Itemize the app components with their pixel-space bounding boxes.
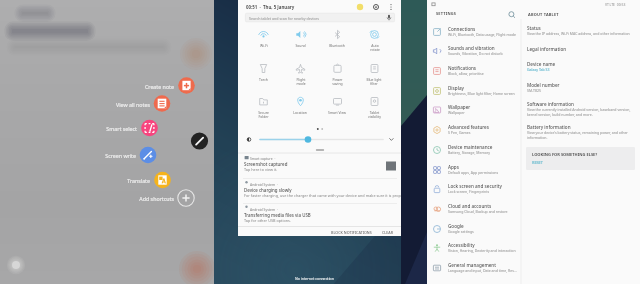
staticText: VT LTE 00:53 [605,2,626,7]
staticText: Model number [527,82,560,88]
button[interactable]: Connections [427,23,521,43]
staticText: Legal information [527,46,567,52]
button[interactable]: Advanced features [427,121,521,141]
staticText: Wi-Fi [260,43,268,48]
staticText: Cloud and accounts [448,203,492,209]
staticText: Smart View [328,110,346,115]
button[interactable]: Tablet visibility [356,96,392,124]
button[interactable]: Wallpaper [427,101,521,121]
staticText: Brightness, Blue light filter, Home scre… [448,91,515,96]
staticText: Accessibility [448,242,475,248]
staticText: General management [448,262,497,268]
button[interactable]: Apps [427,161,521,181]
staticText: Samsung Cloud, Backup and restore [448,209,508,214]
button[interactable]: Device name [523,61,635,79]
button[interactable]: Model number [523,82,635,100]
staticText: View your device's battery status, remai… [527,130,628,140]
button[interactable]: Lock screen and security [427,180,521,200]
button[interactable]: Translate [70,173,150,187]
staticText: Language and input, Date and time, Res… [448,268,517,273]
button[interactable]: Device maintenance [427,141,521,161]
staticText: Wallpaper [448,110,465,115]
staticText: View the currently installed Android ver… [527,107,631,117]
button[interactable]: Software information [523,101,635,119]
staticText: Lock screen, Fingerprints [448,189,490,194]
button[interactable]: Screen write [56,148,136,162]
button[interactable]: Battery information [523,124,635,142]
button[interactable]: View all notes [70,97,150,111]
button[interactable]: Display [427,82,521,102]
button[interactable]: Air command pen [191,132,208,149]
button[interactable]: Secure Folder [245,96,281,124]
staticText: S Pen, Games [448,130,471,135]
staticText: View all notes [116,101,150,108]
staticText: Transferring media files via USB [244,212,311,218]
staticText: View the IP address, Wi-Fi MAC address, … [527,31,630,36]
staticText: Block, allow, prioritise [448,71,484,76]
button[interactable]: Search settings [506,9,518,21]
button[interactable]: Auto rotate [356,29,392,57]
button[interactable]: Accessibility [427,239,521,259]
staticText: Software information [527,101,574,107]
staticText: Power saving [332,77,343,86]
button[interactable]: CLEAR [380,229,396,236]
staticText: Auto rotate [370,43,380,52]
staticText: Apps [448,164,459,170]
button[interactable]: BLOCK NOTIFICATIONS [329,229,374,236]
button[interactable]: Wi-Fi [245,29,281,57]
staticText: Galaxy Tab S3 [527,67,550,72]
staticText: For faster charging, use the charger tha… [244,193,408,198]
button[interactable]: Smart capture · [238,155,402,179]
staticText: Notifications [448,65,477,71]
staticText: Battery information [527,124,571,130]
button[interactable]: Blue light filter [356,63,392,91]
staticText: Display [448,85,464,91]
button[interactable]: Smart View [319,96,355,124]
button[interactable]: Android System · [238,181,402,205]
staticText: Sounds, Vibration, Do not disturb [448,51,503,56]
staticText: Search tablet and scan for nearby device… [249,16,319,21]
button[interactable]: Sound [282,29,318,57]
staticText: Flight mode [296,77,306,86]
staticText: SETTINGS [436,11,457,16]
staticText: Android System · [250,182,278,187]
staticText: Connections [448,26,476,32]
staticText: Secure Folder [258,110,269,119]
staticText: Blue light filter [366,77,382,86]
staticText: Smart select [106,125,137,132]
staticText: Tablet visibility [368,110,381,119]
button[interactable]: Cloud and accounts [427,200,521,220]
staticText: Translate [127,177,150,184]
button[interactable]: Notifications [427,62,521,82]
staticText: Google [448,223,464,229]
button[interactable]: Android System · [238,206,402,230]
staticText: ABOUT TABLET [528,12,559,17]
button[interactable]: Torch [245,63,281,91]
staticText: Screenshot captured [244,161,288,167]
staticText: Create note [144,83,174,90]
button[interactable]: Power saving [319,63,355,91]
button[interactable]: General management [427,259,521,279]
staticText: Screen write [105,152,136,159]
staticText: Sounds and vibration [448,45,495,51]
button[interactable]: LOOKING FOR SOMETHING ELSE? [526,147,635,170]
button[interactable]: Location [282,96,318,124]
button[interactable]: Bluetooth [319,29,355,57]
button[interactable]: Status [523,25,635,43]
button[interactable]: Flight mode [282,63,318,91]
button[interactable]: Add shortcuts [94,191,174,205]
button[interactable]: Sounds and vibration [427,42,521,62]
button[interactable]: Legal information [523,46,635,56]
staticText: Vision, Hearing, Dexterity and interacti… [448,248,516,253]
button[interactable]: Smart select [57,121,137,135]
staticText: Device maintenance [448,144,493,150]
staticText: Battery, Storage, Memory [448,150,491,155]
staticText: Tap here to view it. [244,167,408,172]
staticText: Status [527,25,541,31]
staticText: No internet connection [295,276,334,281]
button[interactable]: SETTINGS [431,9,517,20]
staticText: Location [293,110,307,115]
button[interactable]: Google [427,220,521,240]
button[interactable]: Create note [94,79,174,93]
button[interactable]: RESET [530,159,545,166]
